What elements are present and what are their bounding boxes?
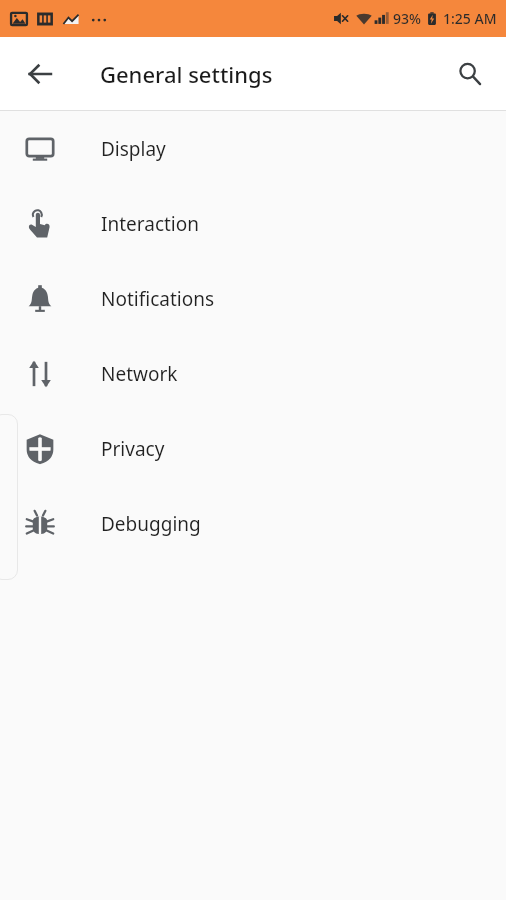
staticText: 1:25 AM: [443, 9, 497, 28]
staticText: 93%: [393, 9, 421, 28]
staticText: General settings: [100, 59, 273, 89]
staticText: Notifications: [101, 286, 215, 312]
button[interactable]: Notifications: [0, 261, 506, 336]
staticText: Debugging: [101, 511, 201, 537]
button[interactable]: Debugging: [0, 486, 506, 561]
staticText: Display: [101, 136, 166, 162]
button[interactable]: Interaction: [0, 186, 506, 261]
button[interactable]: Network: [0, 336, 506, 411]
button[interactable]: Display: [0, 111, 506, 186]
staticText: Network: [101, 361, 178, 387]
staticText: Privacy: [101, 436, 165, 462]
button[interactable]: Privacy: [0, 411, 506, 486]
button[interactable]: Back: [16, 50, 64, 98]
staticText: Interaction: [101, 211, 200, 237]
button[interactable]: Search: [446, 50, 494, 98]
